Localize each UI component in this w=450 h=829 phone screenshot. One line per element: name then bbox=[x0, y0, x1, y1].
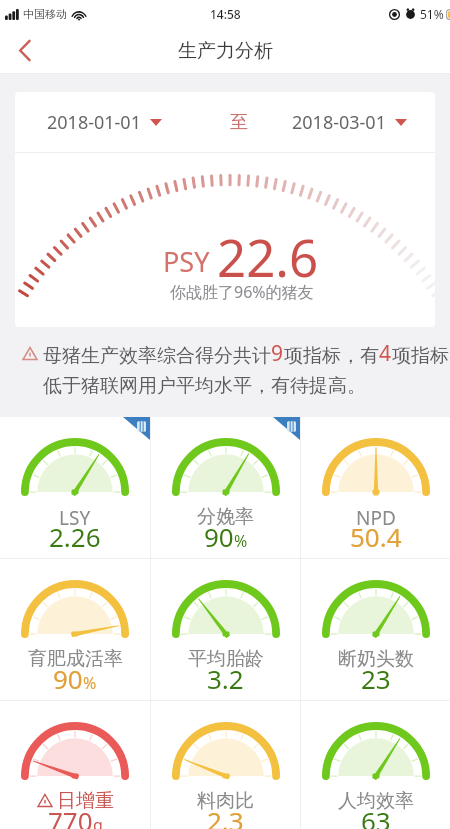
staticText: 母猪生产效率综合得分共计 bbox=[43, 344, 271, 368]
staticText: 2.26 bbox=[49, 519, 101, 554]
staticText: 2.3 bbox=[207, 803, 244, 829]
staticText: 生产力分析 bbox=[178, 39, 273, 63]
button[interactable]: 平均胎龄 bbox=[151, 559, 300, 700]
staticText: % bbox=[234, 530, 248, 552]
staticText: g bbox=[93, 814, 103, 829]
button[interactable]: 人均效率 bbox=[301, 701, 450, 829]
staticText: 90 bbox=[204, 519, 234, 554]
staticText: 至 bbox=[230, 111, 248, 134]
staticText: 你战胜了96%的猪友 bbox=[170, 281, 314, 303]
button[interactable]: 日增重 bbox=[0, 701, 150, 829]
staticText: 22.6 bbox=[217, 222, 319, 291]
staticText: 人均效率 bbox=[338, 789, 414, 813]
staticText: 51% bbox=[420, 6, 444, 22]
button[interactable]: 断奶头数 bbox=[301, 559, 450, 700]
staticText: % bbox=[83, 672, 97, 694]
button[interactable]: NPD bbox=[301, 417, 450, 558]
staticText: 4 bbox=[379, 339, 392, 368]
staticText: 2018-03-01 bbox=[292, 110, 386, 135]
staticText: 14:58 bbox=[210, 6, 241, 22]
staticText: 2018-01-01 bbox=[47, 110, 141, 135]
staticText: NPD bbox=[356, 505, 396, 531]
button[interactable]: 分娩率 bbox=[151, 417, 300, 558]
staticText: 中国移动 bbox=[23, 7, 67, 21]
staticText: 分娩率 bbox=[197, 505, 254, 529]
staticText: 3.2 bbox=[207, 661, 244, 696]
staticText: 低于猪联网用户平均水平，有待提高。 bbox=[43, 374, 366, 398]
staticText: 770 bbox=[48, 803, 93, 829]
staticText: 63 bbox=[361, 803, 391, 829]
button[interactable]: 育肥成活率 bbox=[0, 559, 150, 700]
staticText: 项指标，有 bbox=[284, 344, 379, 368]
staticText: 料肉比 bbox=[197, 789, 254, 813]
button[interactable]: 2018-03-01 bbox=[292, 110, 407, 135]
button[interactable]: LSY bbox=[0, 417, 150, 558]
staticText: 项指标 bbox=[392, 344, 449, 368]
staticText: 断奶头数 bbox=[338, 647, 414, 671]
staticText: PSY bbox=[163, 243, 210, 280]
staticText: 50.4 bbox=[350, 519, 402, 554]
staticText: 23 bbox=[361, 661, 391, 696]
staticText: 90 bbox=[53, 661, 83, 696]
staticText: 育肥成活率 bbox=[28, 647, 123, 671]
staticText: 9 bbox=[271, 339, 284, 368]
staticText: LSY bbox=[59, 505, 91, 531]
button[interactable]: Back bbox=[0, 27, 50, 74]
staticText: 平均胎龄 bbox=[188, 647, 264, 671]
button[interactable]: 料肉比 bbox=[151, 701, 300, 829]
button[interactable]: 2018-01-01 bbox=[47, 110, 162, 135]
staticText: 日增重 bbox=[57, 789, 114, 813]
